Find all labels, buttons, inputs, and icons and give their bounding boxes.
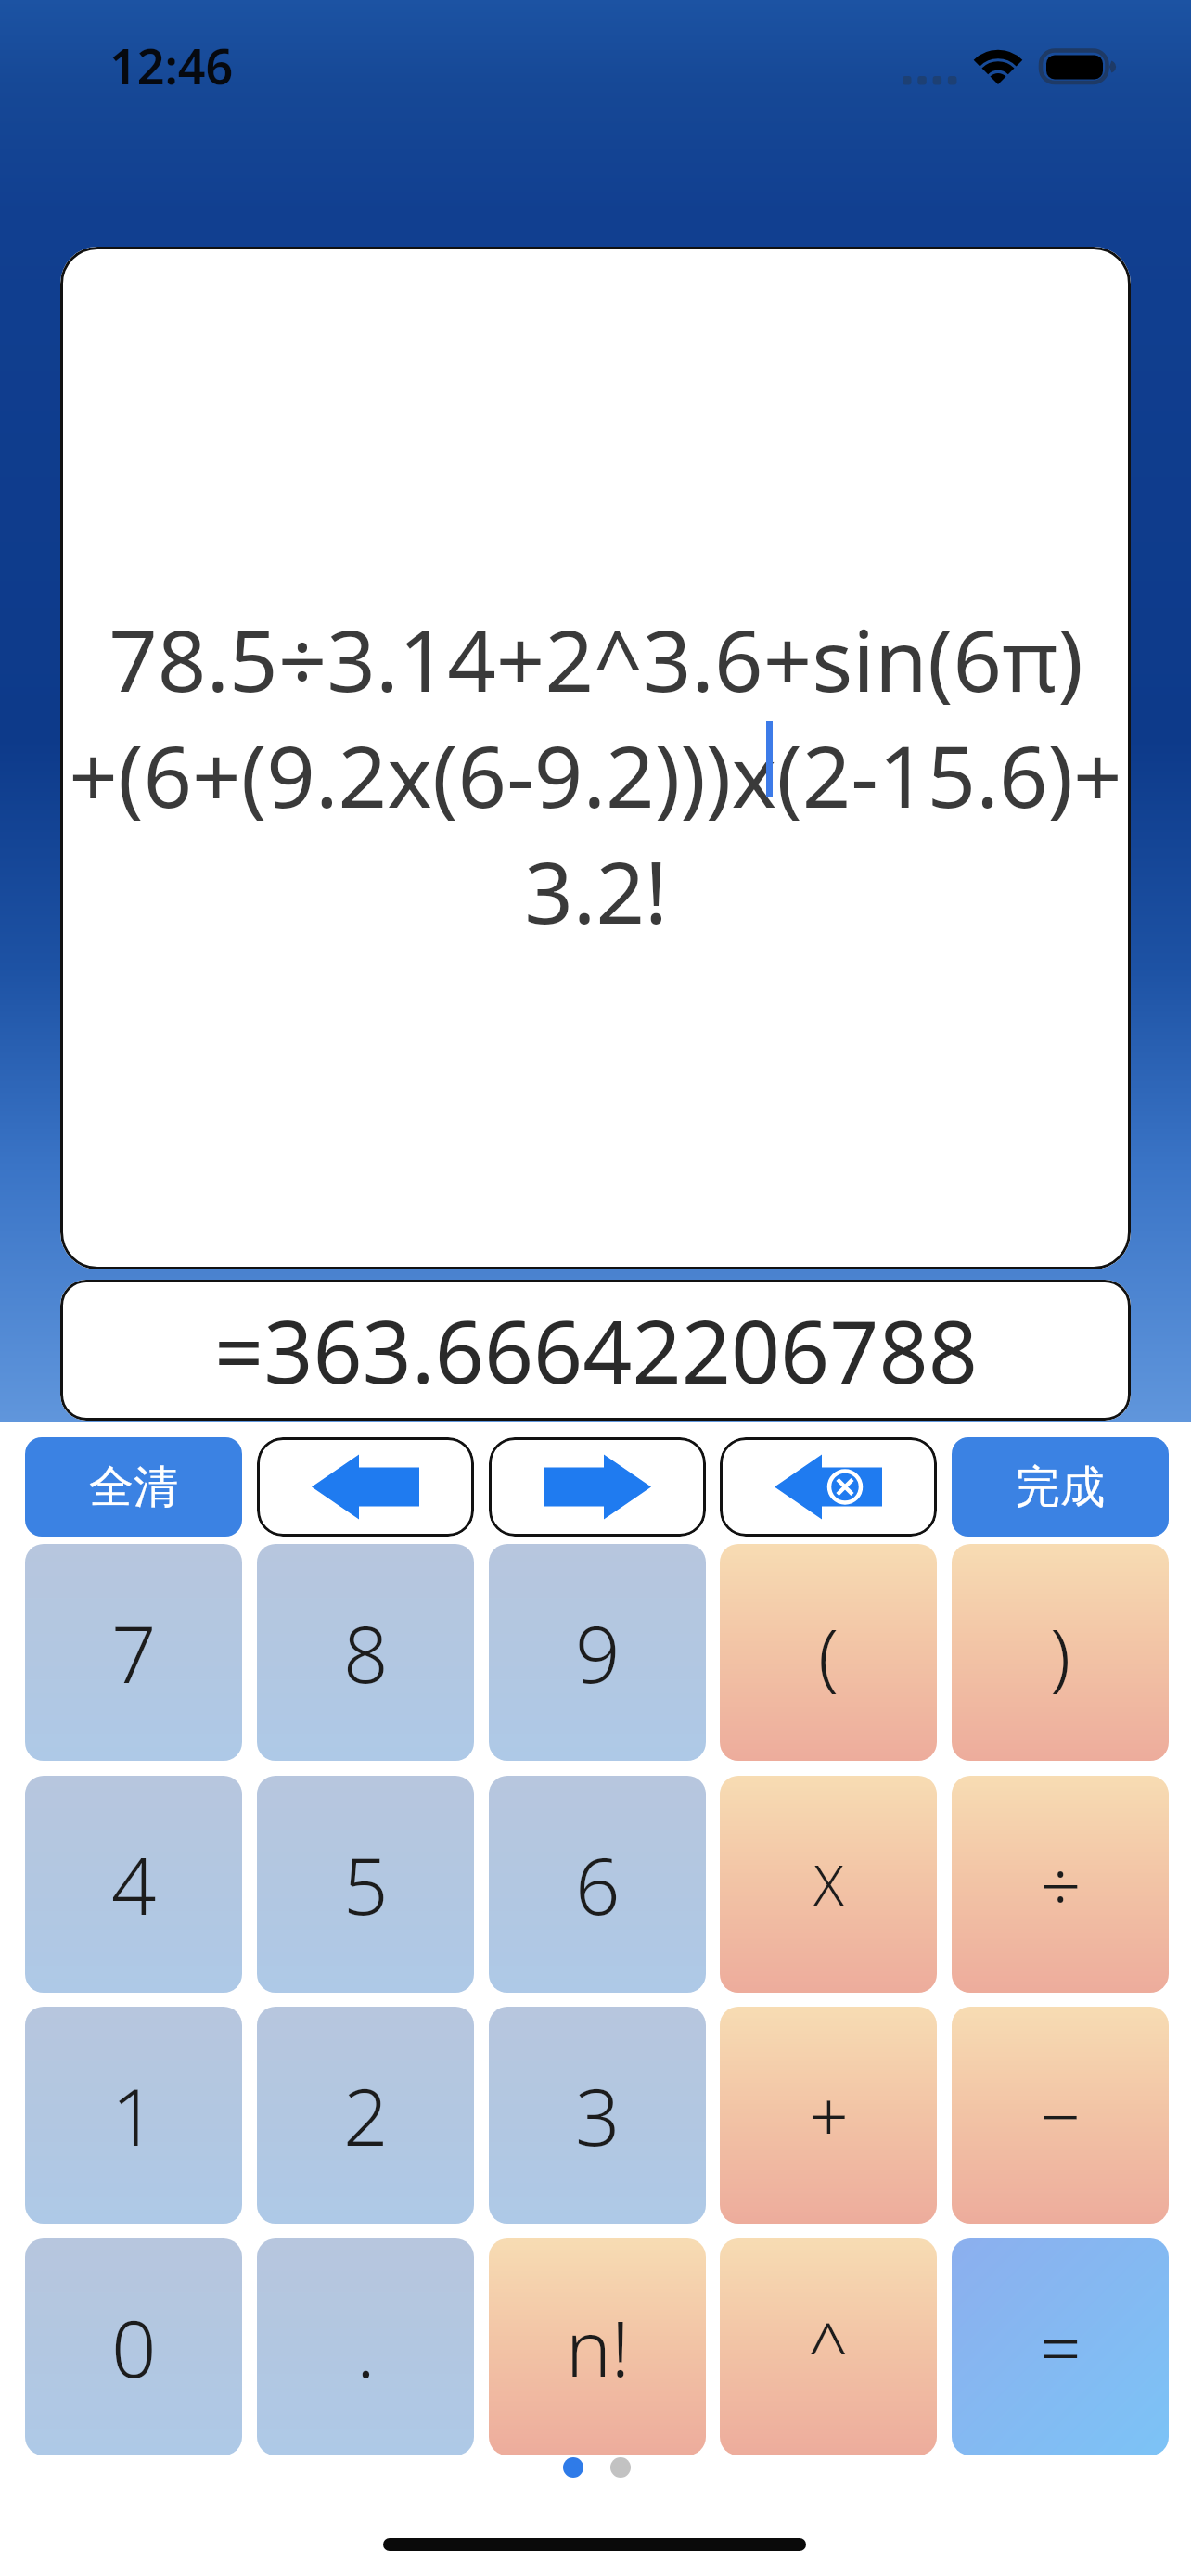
button[interactable]: 2 — [257, 2007, 474, 2224]
button[interactable]: X — [720, 1776, 937, 1993]
staticText: 2 — [343, 2061, 389, 2169]
button[interactable]: 0 — [25, 2238, 242, 2455]
button[interactable]: ÷ — [952, 1776, 1169, 1993]
button[interactable]: = — [952, 2238, 1169, 2455]
staticText: ( — [818, 1602, 839, 1703]
button[interactable]: + — [720, 2007, 937, 2224]
staticText: 7 — [111, 1599, 157, 1706]
staticText: 完成 — [1016, 1460, 1105, 1515]
staticText: 6 — [575, 1830, 621, 1938]
staticText: 12:46 — [109, 32, 234, 98]
button[interactable] — [257, 1437, 474, 1537]
staticText: − — [1041, 2068, 1081, 2162]
staticText: 3 — [575, 2061, 621, 2169]
button[interactable]: − — [952, 2007, 1169, 2224]
staticText: X — [813, 1846, 844, 1922]
button[interactable]: 4 — [25, 1776, 242, 1993]
button[interactable]: 5 — [257, 1776, 474, 1993]
button[interactable] — [720, 1437, 937, 1537]
staticText: ) — [1050, 1602, 1071, 1703]
staticText: ÷ — [1040, 1835, 1082, 1933]
button[interactable]: 完成 — [952, 1437, 1169, 1537]
staticText: 全清 — [89, 1460, 178, 1515]
staticText: 78.5÷3.14+2^3.6+sin(6π) — [109, 601, 1083, 717]
button[interactable]: 全清 — [25, 1437, 242, 1537]
button[interactable]: ) — [952, 1544, 1169, 1761]
staticText: = — [1040, 2298, 1082, 2396]
staticText: . — [356, 2293, 376, 2401]
button[interactable]: n! — [489, 2238, 706, 2455]
button[interactable]: 8 — [257, 1544, 474, 1761]
button[interactable]: ^ — [720, 2238, 937, 2455]
staticText: 3.2! — [524, 833, 668, 949]
staticText: +(6+(9.2x(6-9.2)))x(2-15.6)+ — [69, 717, 1122, 833]
button[interactable]: 6 — [489, 1776, 706, 1993]
staticText: 1 — [111, 2061, 157, 2169]
staticText: 9 — [575, 1599, 621, 1706]
button[interactable]: 9 — [489, 1544, 706, 1761]
staticText: ^ — [808, 2299, 849, 2395]
staticText: + — [809, 2068, 849, 2162]
staticText: 4 — [111, 1830, 157, 1938]
button[interactable]: 7 — [25, 1544, 242, 1761]
button[interactable]: ( — [720, 1544, 937, 1761]
staticText: 0 — [111, 2293, 157, 2401]
staticText: =363.66642206788 — [214, 1292, 978, 1409]
staticText: 5 — [343, 1830, 389, 1938]
staticText: n! — [566, 2295, 630, 2399]
button[interactable]: 1 — [25, 2007, 242, 2224]
button[interactable]: . — [257, 2238, 474, 2455]
staticText: 8 — [343, 1599, 389, 1706]
button[interactable] — [489, 1437, 706, 1537]
button[interactable]: 3 — [489, 2007, 706, 2224]
